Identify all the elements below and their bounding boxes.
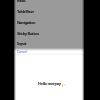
staticText: Sticky Button xyxy=(17,31,39,36)
button[interactable]: Sticky Button xyxy=(14,28,84,39)
staticText: Hello merpay xyxy=(38,81,61,86)
staticText: Navigation xyxy=(17,20,36,25)
button[interactable]: Basic xyxy=(14,0,84,6)
button[interactable]: TableView xyxy=(14,6,84,17)
staticText: TableView xyxy=(17,9,34,14)
staticText: Basic xyxy=(17,0,26,3)
staticText: Cancel xyxy=(17,49,27,54)
staticText: Input xyxy=(17,41,27,46)
button[interactable]: Cancel xyxy=(14,48,84,55)
button[interactable]: Input xyxy=(14,38,84,49)
button[interactable]: Navigation xyxy=(14,17,84,28)
